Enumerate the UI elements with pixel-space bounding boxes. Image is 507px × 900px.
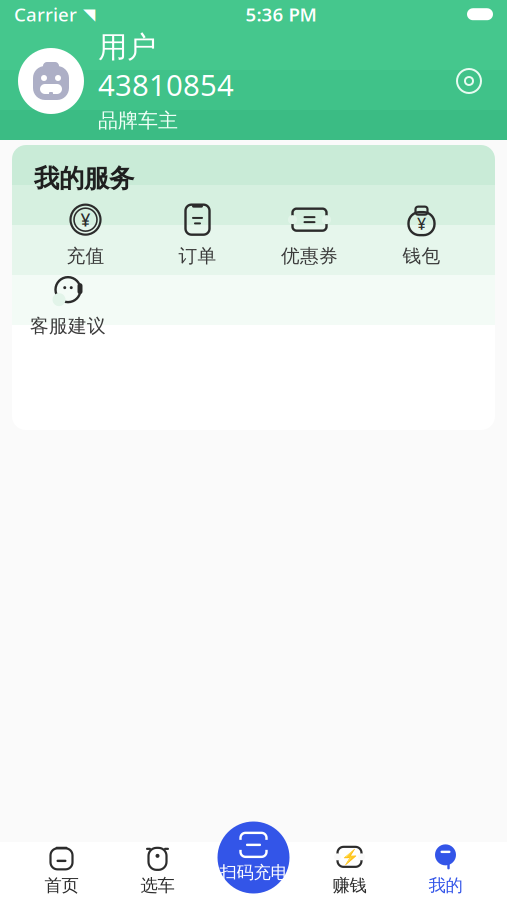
staticText: Carrier [14, 2, 77, 27]
staticText: 品牌车主 [98, 108, 178, 133]
staticText: ¥ [80, 208, 90, 231]
staticText: ¥ [417, 213, 426, 234]
button[interactable]: ¥ [29, 202, 141, 268]
button[interactable]: 订单 [141, 202, 253, 268]
button[interactable]: 扫码充电 [217, 821, 289, 893]
button[interactable]: ¥ [365, 202, 477, 268]
staticText: 5:36 PM [245, 2, 316, 27]
staticText: ◥ [83, 5, 95, 23]
staticText: 优惠券 [281, 245, 338, 268]
button[interactable]: 选车 [109, 842, 205, 898]
staticText: 选车 [140, 875, 174, 896]
button[interactable]: 客服建议 [12, 272, 124, 338]
staticText: 扫码充电 [219, 862, 287, 883]
staticText: 赚钱 [332, 875, 366, 896]
button[interactable]: 我的 [397, 842, 493, 898]
staticText: 我的 [428, 875, 462, 896]
staticText: 钱包 [402, 245, 440, 268]
button[interactable]: 首页 [13, 842, 109, 898]
staticText: 订单 [178, 245, 216, 268]
staticText: ⚡ [340, 848, 358, 865]
staticText: 用户43810854 [98, 29, 234, 104]
button[interactable]: ⚡ [301, 842, 397, 898]
staticText: 客服建议 [30, 315, 106, 338]
button[interactable]: 优惠券 [253, 202, 365, 268]
staticText: 首页 [44, 875, 78, 896]
staticText: 我的服务 [34, 163, 134, 194]
button[interactable]: 设置 [449, 61, 489, 101]
staticText: 充值 [66, 245, 104, 268]
